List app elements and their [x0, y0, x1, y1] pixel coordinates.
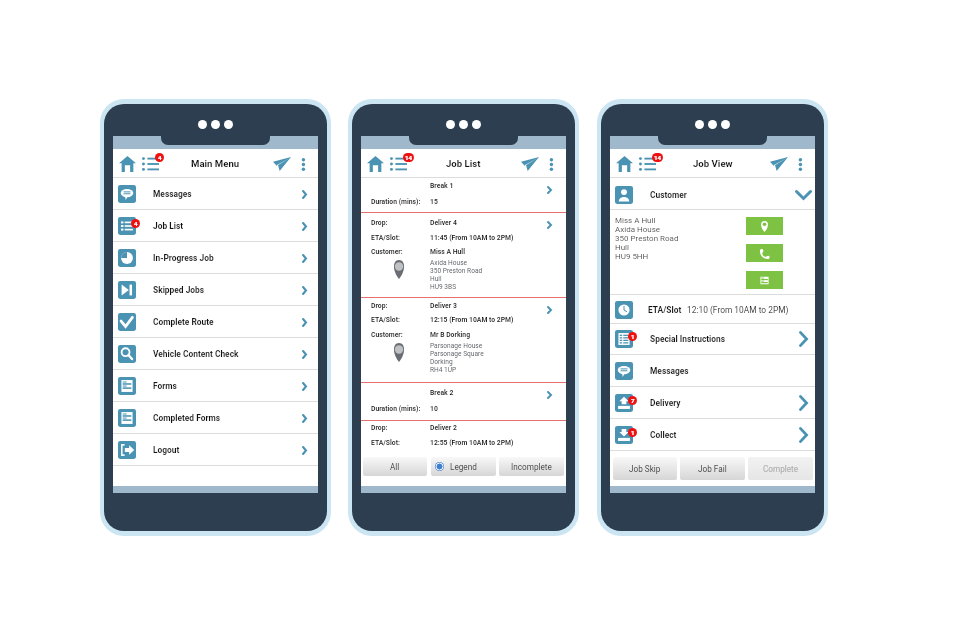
staticText: All	[390, 462, 400, 472]
staticText: Job Fail	[698, 464, 727, 474]
button[interactable]: Send message	[521, 157, 539, 171]
staticText: Customer	[650, 190, 687, 200]
button[interactable]: All	[363, 457, 427, 476]
button[interactable]: Call customer	[746, 244, 783, 262]
button[interactable]: Messages	[610, 355, 815, 387]
staticText: Completed Forms	[153, 413, 221, 423]
staticText: Legend	[450, 462, 477, 472]
staticText: Job List	[153, 221, 184, 231]
button[interactable]: Messages	[113, 178, 318, 210]
staticText: Dorking	[430, 358, 453, 366]
staticText: 1	[631, 429, 635, 436]
staticText: Incomplete	[511, 462, 552, 472]
button[interactable]: Customer details	[746, 271, 783, 289]
staticText: 350 Preston Road	[615, 234, 679, 243]
button[interactable]: Job list	[142, 157, 159, 171]
staticText: 11:45 (From 10AM to 2PM)	[430, 234, 514, 242]
staticText: Main Menu	[191, 158, 240, 169]
staticText: Logout	[153, 445, 180, 455]
staticText: 4	[158, 154, 162, 161]
button[interactable]: Customer	[610, 179, 815, 210]
staticText: Complete	[763, 464, 799, 474]
staticText: Drop:	[371, 424, 388, 432]
staticText: Forms	[153, 381, 177, 391]
staticText: Deliver 2	[430, 424, 457, 432]
staticText: Duration (mins):	[371, 198, 421, 206]
button[interactable]: Job Fail	[680, 457, 745, 480]
staticText: Miss A Hull	[615, 216, 656, 225]
button[interactable]: 4	[113, 210, 318, 242]
button[interactable]: Forms	[113, 370, 318, 402]
staticText: Miss A Hull	[430, 248, 465, 256]
staticText: RH4 1UP	[430, 366, 457, 374]
staticText: 350 Preston Road	[430, 267, 483, 275]
button[interactable]: More options	[300, 158, 306, 171]
staticText: 10	[430, 405, 438, 413]
button[interactable]: Home	[119, 156, 136, 172]
staticText: Mr B Dorking	[430, 331, 471, 339]
staticText: Break 2	[430, 389, 454, 397]
button[interactable]: 1	[610, 419, 815, 451]
staticText: Collect	[650, 430, 677, 440]
staticText: Customer:	[371, 331, 403, 339]
button[interactable]: More options	[797, 158, 803, 171]
staticText: 15	[430, 198, 438, 206]
staticText: 7	[631, 397, 635, 404]
button[interactable]: Completed Forms	[113, 402, 318, 434]
staticText: HU9 5HH	[615, 252, 649, 261]
staticText: In-Progress Job	[153, 253, 214, 263]
staticText: Vehicle Content Check	[153, 349, 239, 359]
button[interactable]: Job list	[390, 157, 407, 171]
button[interactable]: 1	[610, 323, 815, 355]
staticText: ETA/Slot:	[371, 234, 400, 242]
button[interactable]: Complete	[748, 457, 813, 480]
button[interactable]: Open map	[746, 217, 783, 235]
button[interactable]: Skipped Jobs	[113, 274, 318, 306]
button[interactable]: Logout	[113, 434, 318, 466]
staticText: Axida House	[430, 259, 468, 267]
button[interactable]: ETA/Slot	[610, 295, 815, 324]
staticText: 1	[631, 333, 635, 340]
staticText: Break 1	[430, 182, 454, 190]
staticText: Messages	[153, 189, 192, 199]
staticText: 14	[405, 154, 413, 161]
staticText: 4	[134, 220, 138, 227]
staticText: Drop:	[371, 302, 388, 310]
button[interactable]: Legend	[431, 457, 496, 476]
staticText: Customer:	[371, 248, 403, 256]
button[interactable]: Incomplete	[499, 457, 564, 476]
staticText: HU9 3BS	[430, 283, 457, 291]
staticText: ETA/Slot	[648, 305, 682, 315]
button[interactable]: Send message	[770, 157, 788, 171]
button[interactable]: Home	[616, 156, 633, 172]
staticText: ETA/Slot:	[371, 439, 400, 447]
staticText: Drop:	[371, 219, 388, 227]
staticText: Complete Route	[153, 317, 214, 327]
button[interactable]: 7	[610, 387, 815, 419]
staticText: Duration (mins):	[371, 405, 421, 413]
staticText: 12:55 (From 10AM to 2PM)	[430, 439, 514, 447]
button[interactable]: Job Skip	[613, 457, 677, 480]
staticText: Axida House	[615, 225, 661, 234]
staticText: 14	[654, 154, 662, 161]
staticText: Hull	[430, 275, 442, 283]
button[interactable]: Vehicle Content Check	[113, 338, 318, 370]
button[interactable]: In-Progress Job	[113, 242, 318, 274]
staticText: Hull	[615, 243, 630, 252]
button[interactable]: Job list	[639, 157, 656, 171]
button[interactable]: Home	[367, 156, 384, 172]
staticText: 12:10 (From 10AM to 2PM)	[687, 305, 789, 315]
staticText: Deliver 3	[430, 302, 457, 310]
staticText: Parsonage House	[430, 342, 483, 350]
button[interactable]: More options	[548, 158, 554, 171]
staticText: Deliver 4	[430, 219, 457, 227]
staticText: Skipped Jobs	[153, 285, 205, 295]
staticText: Special Instructions	[650, 334, 726, 344]
staticText: Messages	[650, 366, 689, 376]
staticText: Job List	[446, 158, 481, 169]
staticText: ETA/Slot:	[371, 316, 400, 324]
staticText: Parsonage Square	[430, 350, 484, 358]
button[interactable]: Complete Route	[113, 306, 318, 338]
staticText: 12:15 (From 10AM to 2PM)	[430, 316, 514, 324]
button[interactable]: Send message	[273, 157, 291, 171]
